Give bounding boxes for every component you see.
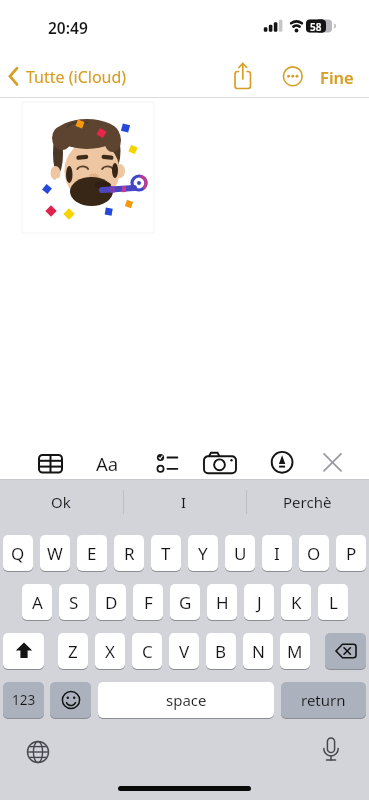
button[interactable]: B [206, 633, 236, 669]
staticText: Aa [96, 451, 119, 476]
button[interactable] [50, 682, 91, 718]
button[interactable]: L [318, 584, 348, 620]
staticText: S [69, 591, 79, 614]
staticText: B [215, 640, 227, 663]
button[interactable] [325, 633, 366, 669]
button[interactable] [19, 733, 57, 771]
button[interactable] [265, 446, 299, 480]
button[interactable] [22, 102, 154, 233]
staticText: L [329, 591, 338, 614]
button[interactable]: Z [58, 633, 88, 669]
staticText: P [346, 542, 357, 565]
staticText: K [291, 591, 302, 614]
staticText: N [252, 640, 265, 663]
staticText: 123 [12, 691, 36, 709]
staticText: C [142, 640, 153, 663]
staticText: I [274, 542, 280, 565]
staticText: I [181, 492, 187, 512]
button[interactable] [3, 633, 44, 669]
button[interactable] [312, 731, 350, 769]
staticText: Fine [320, 66, 354, 87]
button[interactable]: S [59, 584, 89, 620]
staticText: F [144, 591, 153, 614]
button[interactable]: Tutte (iCloud) [26, 66, 146, 87]
staticText: Z [68, 640, 78, 663]
button[interactable]: C [132, 633, 162, 669]
button[interactable]: R [114, 535, 144, 571]
button[interactable]: space [98, 682, 274, 718]
staticText: return [301, 690, 346, 710]
staticText: V [179, 640, 190, 663]
button[interactable]: G [170, 584, 200, 620]
staticText: G [179, 591, 192, 614]
button[interactable] [278, 60, 308, 92]
staticText: Q [11, 542, 25, 565]
button[interactable]: 123 [3, 682, 44, 718]
staticText: space [166, 690, 207, 710]
button[interactable]: M [280, 633, 310, 669]
staticText: U [234, 542, 247, 565]
button[interactable]: U [225, 535, 255, 571]
staticText: 20:49 [48, 17, 88, 37]
staticText: X [105, 640, 115, 663]
button[interactable]: A [22, 584, 52, 620]
button[interactable]: return [281, 682, 366, 718]
button[interactable]: N [243, 633, 273, 669]
staticText: O [307, 542, 321, 565]
button[interactable]: O [299, 535, 329, 571]
button[interactable]: P [336, 535, 366, 571]
staticText: Tutte (iCloud) [26, 66, 127, 87]
button[interactable]: E [77, 535, 107, 571]
button[interactable]: Fine [314, 66, 360, 87]
button[interactable] [228, 60, 258, 92]
staticText: Y [198, 542, 208, 565]
button[interactable]: F [133, 584, 163, 620]
staticText: T [161, 542, 171, 565]
staticText: R [124, 542, 135, 565]
button[interactable] [90, 446, 124, 480]
button[interactable]: I [144, 488, 224, 516]
button[interactable]: I [262, 535, 292, 571]
button[interactable]: Perchè [267, 488, 347, 516]
button[interactable] [148, 446, 182, 480]
button[interactable]: Ok [21, 488, 101, 516]
button[interactable]: X [95, 633, 125, 669]
staticText: D [105, 591, 118, 614]
button[interactable] [315, 446, 349, 480]
button[interactable]: V [169, 633, 199, 669]
staticText: Ok [51, 492, 71, 512]
button[interactable]: J [244, 584, 274, 620]
button[interactable]: W [40, 535, 70, 571]
button[interactable]: H [207, 584, 237, 620]
button[interactable]: Y [188, 535, 218, 571]
staticText: A [32, 591, 43, 614]
staticText: J [257, 591, 262, 614]
button[interactable] [203, 446, 237, 480]
staticText: 58 [310, 20, 322, 33]
staticText: M [287, 640, 303, 663]
staticText: W [47, 542, 63, 565]
button[interactable] [33, 446, 67, 480]
staticText: H [216, 591, 229, 614]
staticText: E [87, 542, 97, 565]
button[interactable]: Q [3, 535, 33, 571]
button[interactable]: K [281, 584, 311, 620]
staticText: Perchè [283, 492, 332, 512]
button[interactable]: D [96, 584, 126, 620]
button[interactable]: T [151, 535, 181, 571]
